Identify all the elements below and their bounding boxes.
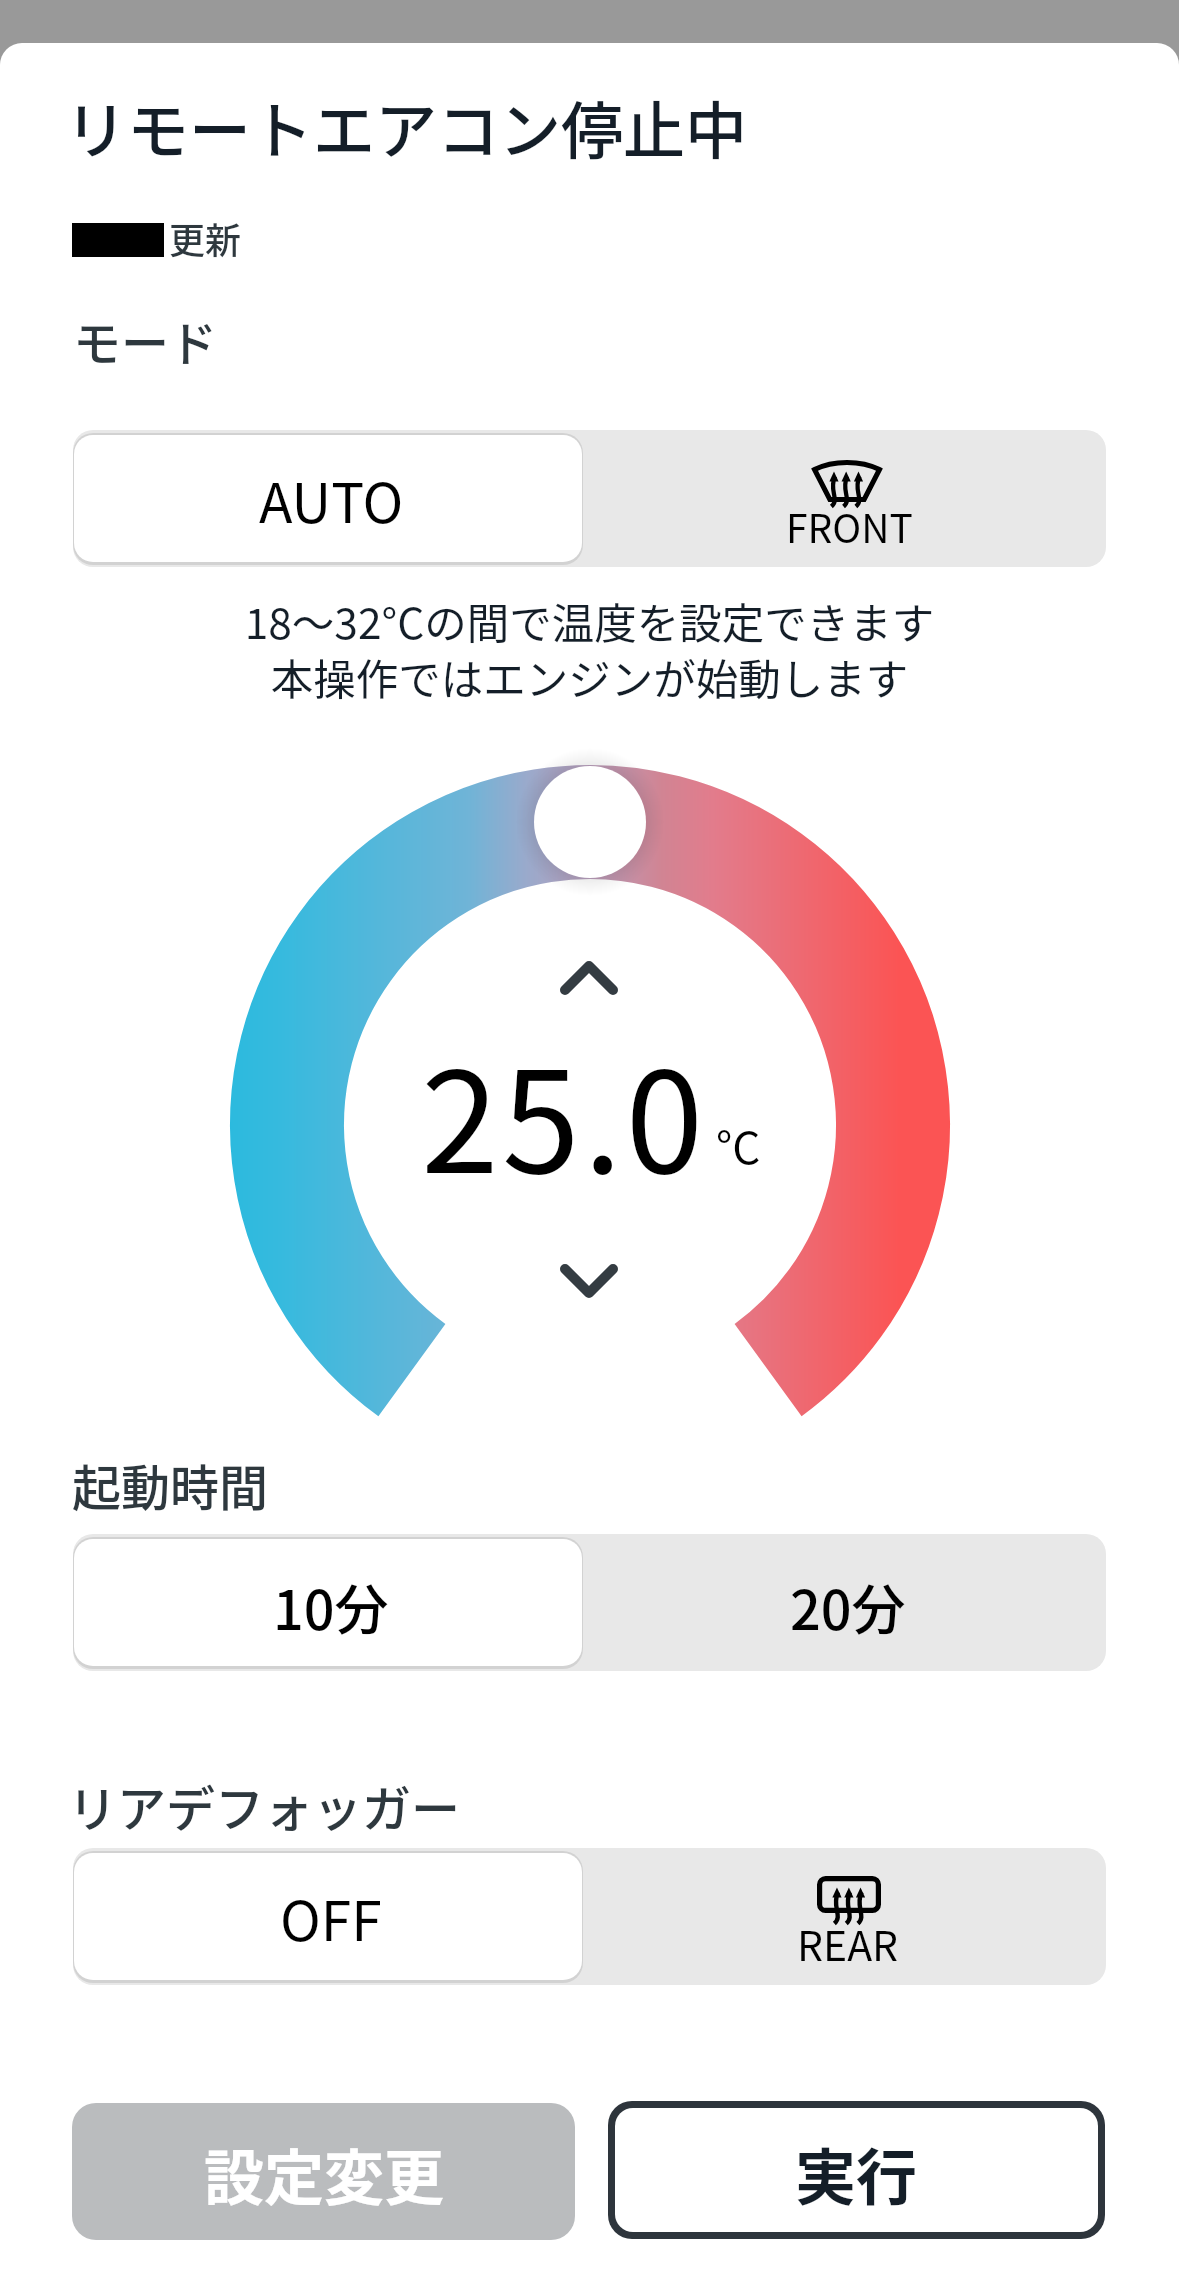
staticText: 25.0: [421, 1011, 707, 1214]
button[interactable]: Rear defogger: [589, 1848, 1106, 1985]
staticText: モード: [73, 305, 218, 375]
button[interactable]: 10分: [73, 1534, 589, 1671]
other: Rear defogger: [817, 1876, 881, 1924]
button[interactable]: Front defroster: [589, 430, 1106, 567]
button[interactable]: OFF: [73, 1848, 589, 1985]
button[interactable]: Increase temperature: [549, 948, 629, 1008]
staticText: 設定変更: [204, 2130, 444, 2217]
staticText: リモートエアコン停止中: [65, 82, 748, 172]
other: Front defroster: [812, 459, 882, 507]
staticText: 20分: [790, 1567, 906, 1645]
button[interactable]: AUTO: [73, 430, 589, 567]
staticText: OFF: [280, 1877, 382, 1957]
staticText: 実行: [795, 2129, 918, 2217]
staticText: 更新: [169, 212, 242, 264]
staticText: 18〜32°Cの間で温度を設定できます 本操作ではエンジンが始動します: [0, 590, 1179, 707]
button[interactable]: 実行: [615, 2108, 1098, 2232]
staticText: 起動時間: [72, 1449, 269, 1520]
staticText: FRONT: [786, 498, 913, 554]
button[interactable]: 設定変更: [72, 2103, 575, 2240]
button[interactable]: 20分: [589, 1534, 1106, 1671]
staticText: °C: [716, 1113, 761, 1177]
staticText: AUTO: [259, 459, 404, 539]
staticText: REAR: [797, 1913, 899, 1972]
staticText: リアデフォッガー: [68, 1770, 461, 1841]
button[interactable]: Decrease temperature: [549, 1251, 629, 1311]
staticText: 10分: [273, 1567, 389, 1645]
